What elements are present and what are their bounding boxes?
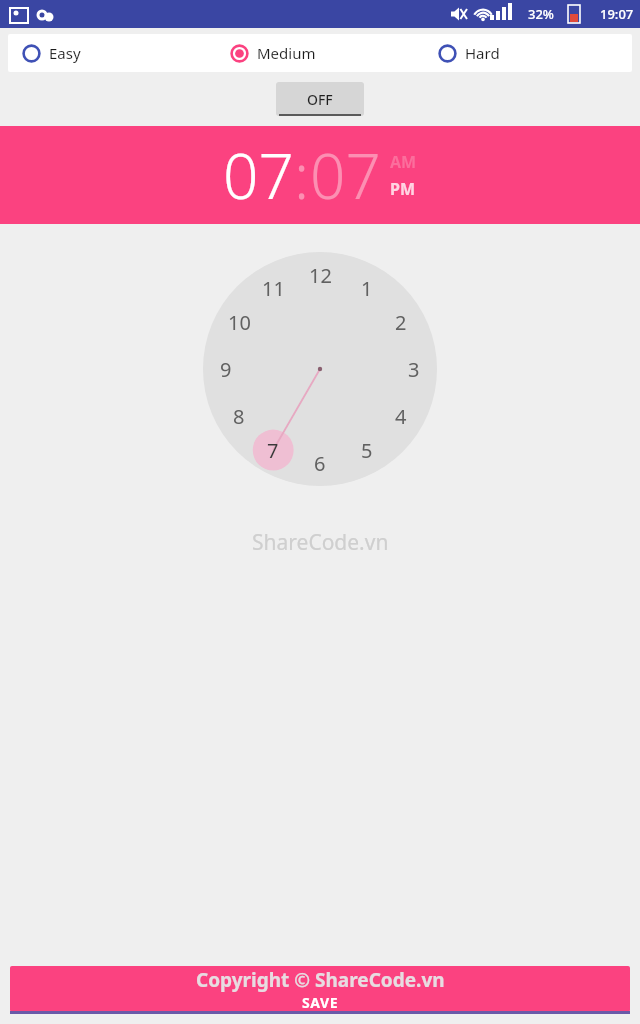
staticText: 19:07 — [600, 5, 634, 23]
staticText: 11 — [262, 275, 285, 302]
staticText: : — [294, 133, 310, 217]
button[interactable]: Copyright © ShareCode.vn — [10, 966, 630, 1012]
staticText: 3 — [408, 356, 420, 383]
staticText: 9 — [220, 356, 232, 383]
staticText: 8 — [233, 403, 245, 430]
staticText: Medium — [257, 43, 316, 63]
button[interactable]: Clock face hour picker — [203, 252, 437, 486]
button[interactable]: Easy — [8, 34, 216, 72]
staticText: 7 — [267, 437, 279, 464]
staticText: SAVE — [302, 993, 339, 1012]
staticText: Hard — [465, 43, 500, 63]
staticText: 4 — [395, 403, 407, 430]
staticText: Easy — [49, 43, 81, 63]
staticText: 1 — [361, 275, 373, 302]
staticText: 6 — [314, 450, 326, 477]
button[interactable]: PM — [390, 178, 416, 200]
staticText: 12 — [309, 262, 332, 289]
staticText: OFF — [307, 90, 333, 109]
button[interactable]: OFF — [276, 82, 364, 116]
staticText: Copyright © ShareCode.vn — [196, 967, 445, 993]
staticText: ShareCode.vn — [252, 528, 389, 557]
staticText: 2 — [395, 309, 407, 336]
button[interactable]: 07 — [223, 133, 294, 217]
staticText: 10 — [228, 309, 251, 336]
staticText: 5 — [361, 437, 373, 464]
button[interactable]: Hard — [424, 34, 632, 72]
button[interactable]: AM — [390, 151, 417, 173]
button[interactable]: 07 — [310, 133, 381, 217]
button[interactable]: Medium — [216, 34, 424, 72]
staticText: 32% — [528, 5, 554, 23]
